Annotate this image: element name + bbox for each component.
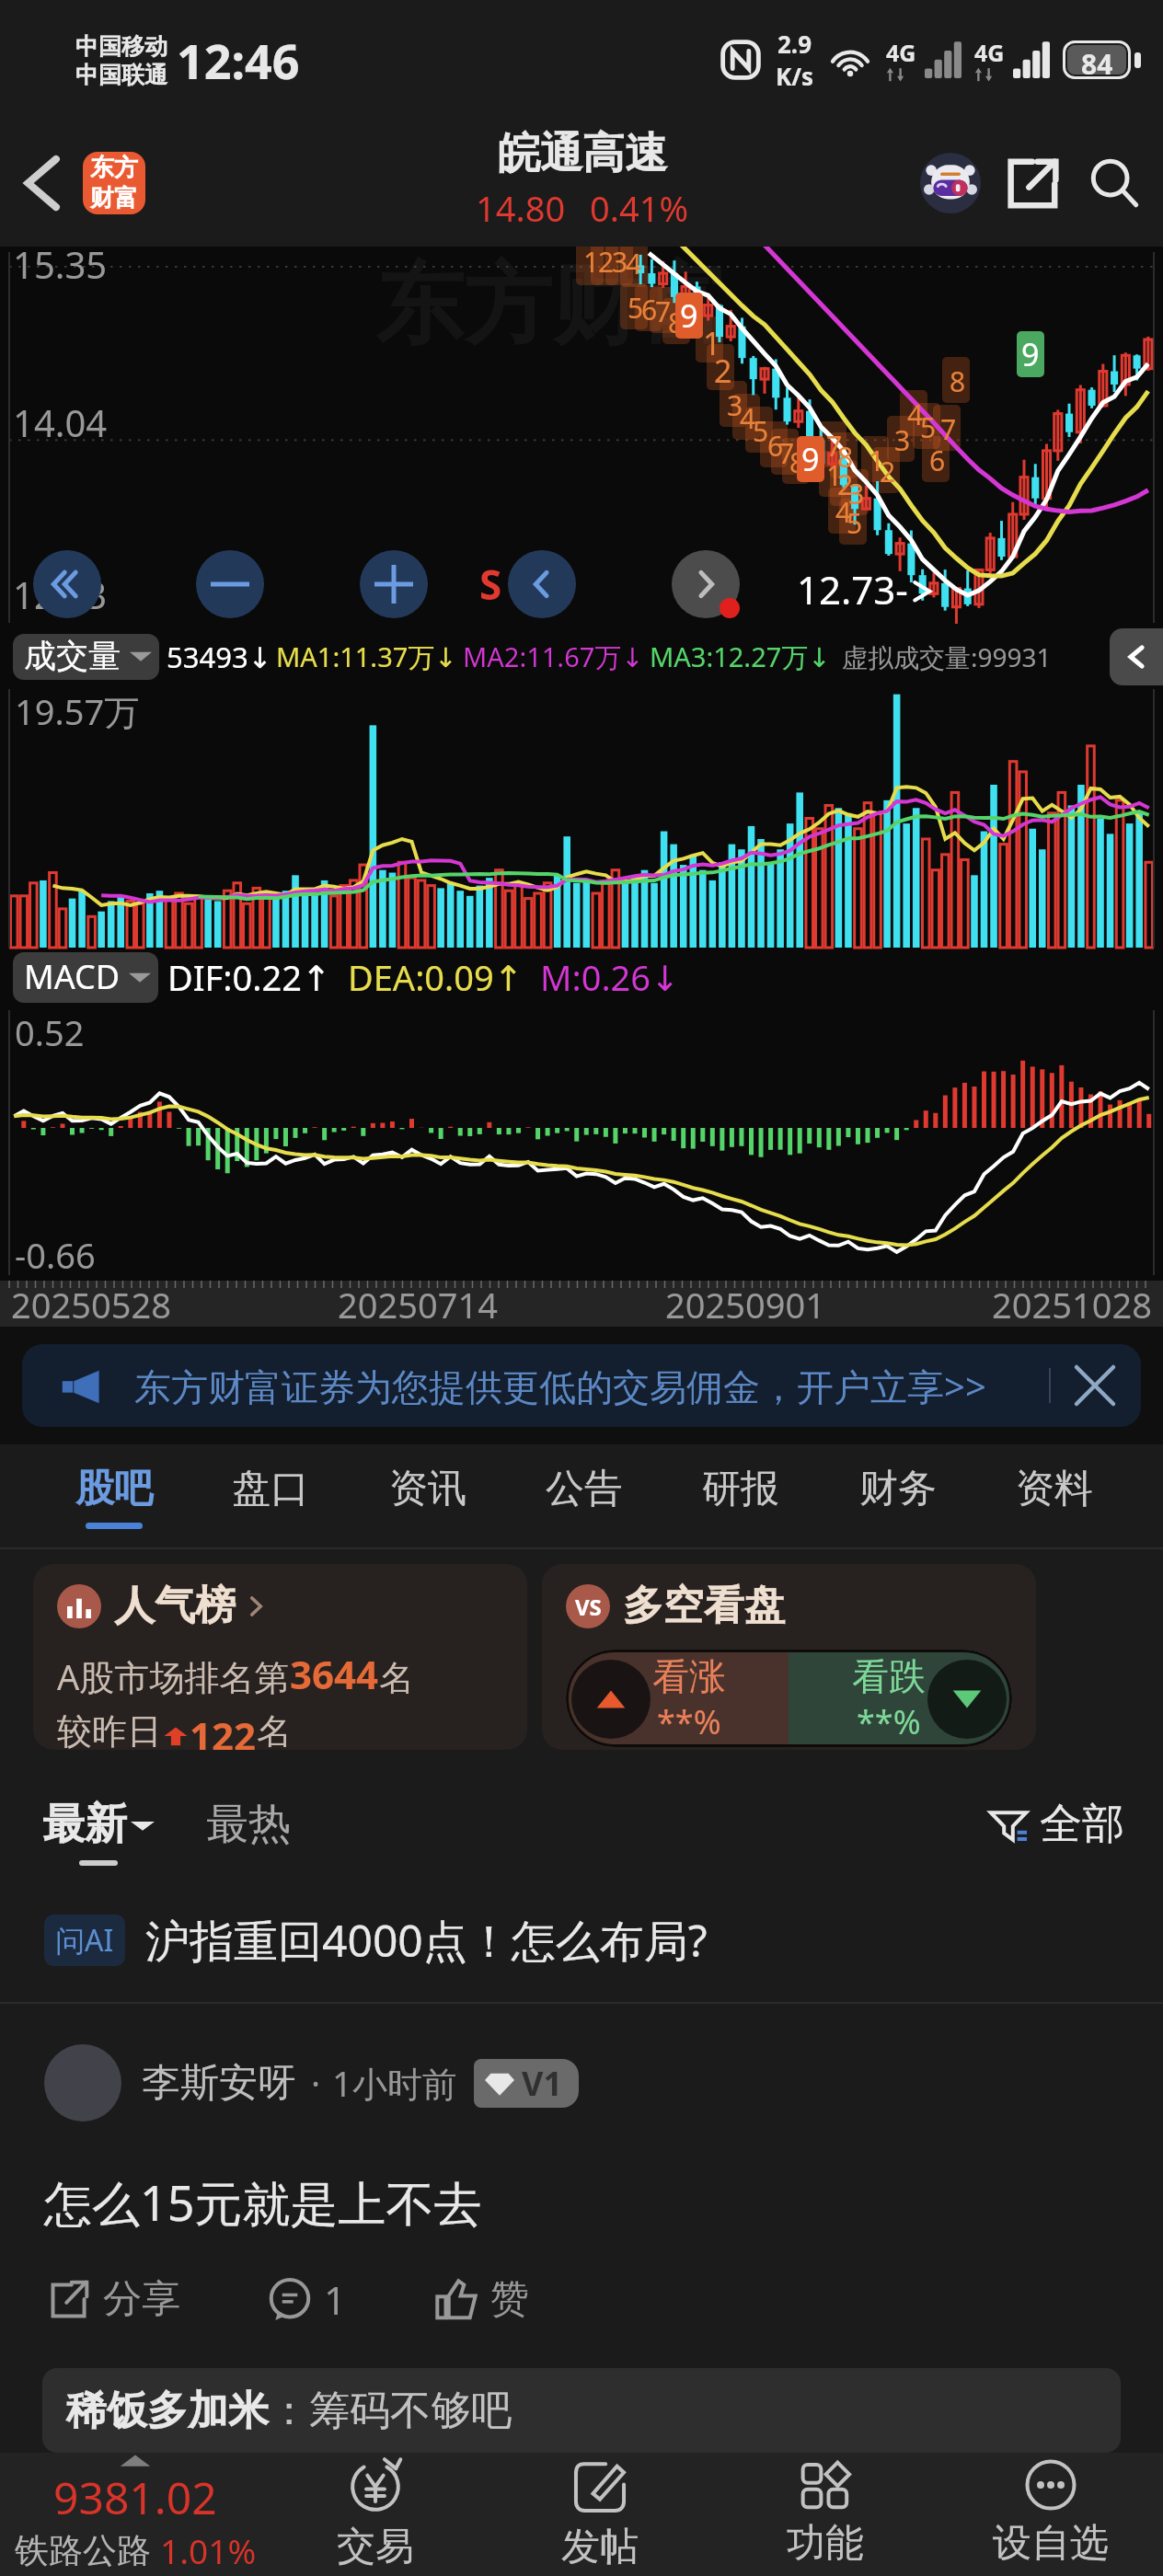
button[interactable]: Expand panel <box>1110 628 1163 685</box>
button[interactable]: 赞 <box>435 2275 529 2324</box>
staticText: 虚拟成交量:99931 <box>842 639 1052 674</box>
staticText: S <box>479 557 502 612</box>
staticText: 资讯 <box>389 1465 466 1513</box>
staticText: 发帖 <box>561 2523 639 2571</box>
staticText: 3 <box>848 475 865 512</box>
staticText: 9 <box>680 294 698 337</box>
staticText: 1 <box>826 456 843 494</box>
staticText: K/s <box>776 60 814 92</box>
staticText: 2 <box>837 466 854 503</box>
button[interactable]: 研报 <box>687 1455 794 1538</box>
staticText: 4G <box>974 37 1005 68</box>
staticText: 5 <box>920 408 937 446</box>
staticText: 看涨 <box>652 1653 726 1699</box>
button[interactable]: 发帖 <box>488 2453 712 2576</box>
staticText: 财富 <box>90 183 138 213</box>
staticText: 分享 <box>103 2275 180 2324</box>
staticText: 名 <box>379 1656 414 1700</box>
staticText: 4 <box>835 493 852 531</box>
staticText: 2 <box>880 453 896 490</box>
staticText: 1 <box>703 322 721 364</box>
staticText: 人气榜 <box>114 1581 236 1631</box>
button[interactable]: Search <box>1086 155 1143 212</box>
staticText: MA1:11.37万↓ <box>276 638 457 675</box>
button[interactable]: Fast back <box>33 550 101 618</box>
button[interactable]: 财务 <box>845 1455 951 1538</box>
staticText: 3 <box>612 247 628 281</box>
staticText: 问AI <box>55 1920 114 1961</box>
staticText: 2 <box>714 350 732 392</box>
staticText: 8 <box>789 443 806 481</box>
staticText: · <box>311 2059 321 2107</box>
staticText: 5 <box>628 289 644 327</box>
button[interactable]: Previous <box>508 550 576 618</box>
button[interactable]: 设自选 <box>938 2453 1163 2576</box>
staticText: 0.52 <box>15 1008 85 1056</box>
button[interactable]: Zoom in <box>360 550 428 618</box>
button[interactable]: 股吧 <box>61 1455 167 1538</box>
staticText: 14.04 <box>13 397 108 447</box>
staticText: 铁路公路 <box>15 2529 151 2572</box>
staticText: 全部 <box>1040 1798 1124 1851</box>
button[interactable]: 公告 <box>531 1455 638 1538</box>
button[interactable]: 最热 <box>206 1805 291 1858</box>
staticText: 14.80 <box>476 184 566 232</box>
staticText: 7 <box>778 434 795 472</box>
button[interactable]: 分享 <box>48 2275 180 2324</box>
button[interactable]: 稀饭多加米 <box>42 2368 1121 2453</box>
button[interactable]: MACD <box>13 952 158 1003</box>
button[interactable]: Next <box>672 550 740 618</box>
staticText: 2.9 <box>777 28 812 60</box>
staticText: 稀饭多加米 <box>66 2386 269 2436</box>
button[interactable]: Close banner <box>1075 1365 1115 1406</box>
staticText: 怎么15元就是上不去 <box>44 2169 482 2235</box>
staticText: 6 <box>767 427 784 465</box>
button[interactable]: 人气榜 <box>33 1564 527 1750</box>
staticText: 3644 <box>290 1648 379 1700</box>
staticText: 功能 <box>787 2519 864 2568</box>
staticText: 东方财富 <box>375 250 729 362</box>
button[interactable]: Zoom out <box>196 550 264 618</box>
button[interactable]: 9381.02 <box>7 2453 263 2573</box>
staticText: 84 <box>1081 45 1113 75</box>
staticText: 1 <box>324 2273 347 2326</box>
button[interactable]: Back <box>20 148 149 218</box>
staticText: 19.57万 <box>15 687 140 735</box>
staticText: 资料 <box>1016 1465 1093 1513</box>
staticText: 东方财富证券为您提供更低的交易佣金，开户立享>> <box>134 1361 986 1411</box>
button[interactable]: VS <box>542 1564 1036 1750</box>
staticText: 7 <box>655 293 672 330</box>
staticText: 4 <box>907 396 924 433</box>
button[interactable]: 盘口 <box>217 1455 324 1538</box>
button[interactable]: 资料 <box>1001 1455 1108 1538</box>
staticText: 8 <box>668 304 685 341</box>
staticText: 2 <box>598 247 615 281</box>
staticText: 4G <box>886 37 916 68</box>
staticText: 15.35 <box>13 247 108 289</box>
button[interactable]: Share <box>1005 155 1062 212</box>
staticText: 7 <box>940 410 957 448</box>
button[interactable]: 交易 <box>263 2453 488 2576</box>
staticText: 成交量 <box>24 636 121 676</box>
staticText: MA2:11.67万↓ <box>463 638 644 675</box>
button[interactable]: 功能 <box>712 2453 938 2576</box>
staticText: 沪指重回4000点！怎么布局? <box>145 1910 708 1971</box>
staticText: 5 <box>846 504 863 542</box>
staticText: 多空看盘 <box>623 1581 785 1631</box>
button[interactable]: 问AI <box>44 1877 1163 2004</box>
button[interactable]: 东方财富证券为您提供更低的交易佣金，开户立享>> <box>22 1344 1141 1427</box>
staticText: 最新 <box>42 1798 127 1851</box>
staticText: 8 <box>837 438 854 476</box>
button[interactable]: 全部 <box>990 1805 1124 1858</box>
button[interactable]: 最新 <box>42 1798 155 1866</box>
staticText: 设自选 <box>993 2519 1109 2568</box>
staticText: 5 <box>753 412 769 450</box>
staticText: 20250528 <box>11 1281 171 1327</box>
button[interactable]: 资讯 <box>374 1455 481 1538</box>
staticText: M:0.26↓ <box>540 953 680 1001</box>
button[interactable]: 成交量 <box>13 634 159 680</box>
staticText: 3 <box>894 421 911 459</box>
button[interactable]: AI assistant <box>920 153 981 213</box>
button[interactable]: 1 <box>269 2273 347 2326</box>
staticText: 盘口 <box>232 1465 309 1513</box>
